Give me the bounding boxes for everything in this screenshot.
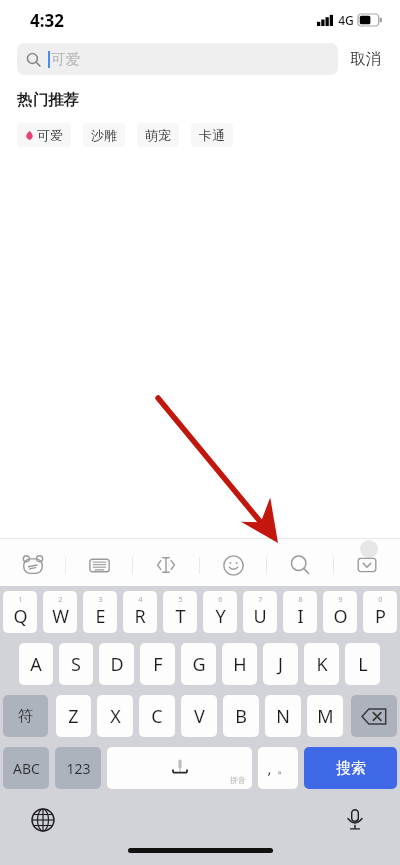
button[interactable]: F: [140, 643, 175, 685]
staticText: B: [235, 704, 247, 729]
button[interactable]: Change language: [30, 807, 56, 833]
button[interactable]: 1: [3, 591, 37, 633]
button[interactable]: 2: [43, 591, 77, 633]
staticText: T: [175, 604, 186, 629]
staticText: ,: [267, 758, 272, 778]
staticText: A: [30, 652, 42, 677]
button[interactable]: H: [222, 643, 257, 685]
staticText: W: [52, 604, 69, 629]
button[interactable]: Cursor: [133, 544, 199, 586]
button[interactable]: Handwriting: [66, 544, 132, 586]
staticText: Z: [68, 704, 79, 729]
button[interactable]: 符: [3, 695, 48, 737]
button[interactable]: V: [181, 695, 217, 737]
staticText: E: [95, 604, 106, 629]
button[interactable]: C: [139, 695, 175, 737]
staticText: G: [192, 652, 206, 677]
button[interactable]: Punctuation: [258, 747, 298, 789]
button[interactable]: B: [223, 695, 259, 737]
staticText: 拼音: [230, 775, 246, 785]
button[interactable]: Voice input: [342, 806, 368, 832]
staticText: 4:32: [30, 9, 64, 32]
button[interactable]: D: [99, 643, 134, 685]
staticText: O: [333, 604, 348, 629]
button[interactable]: Z: [56, 695, 91, 737]
staticText: 热门推荐: [17, 90, 79, 110]
button[interactable]: 萌宠: [137, 123, 179, 147]
staticText: ABC: [13, 759, 40, 778]
staticText: 沙雕: [91, 127, 117, 143]
staticText: Q: [13, 604, 28, 629]
button[interactable]: 取消: [338, 49, 383, 69]
button[interactable]: 6: [203, 591, 237, 633]
button[interactable]: J: [263, 643, 298, 685]
staticText: 卡通: [199, 127, 225, 143]
staticText: 5: [178, 594, 183, 604]
button[interactable]: ABC: [3, 747, 49, 789]
button[interactable]: 8: [283, 591, 317, 633]
staticText: N: [276, 704, 290, 729]
staticText: 可爱: [37, 127, 63, 143]
staticText: Y: [215, 604, 226, 629]
button[interactable]: Space: [107, 747, 252, 789]
staticText: M: [317, 704, 334, 729]
staticText: 7: [258, 594, 263, 604]
staticText: K: [316, 652, 328, 677]
button[interactable]: L: [345, 643, 380, 685]
button[interactable]: 沙雕: [83, 123, 125, 147]
staticText: 4G: [338, 12, 354, 28]
button[interactable]: N: [265, 695, 301, 737]
button[interactable]: 5: [163, 591, 197, 633]
staticText: 6: [218, 594, 223, 604]
staticText: 4: [138, 594, 143, 604]
staticText: 搜索: [336, 759, 366, 778]
button[interactable]: Search: [267, 544, 333, 586]
staticText: 0: [378, 594, 383, 604]
button[interactable]: 123: [55, 747, 101, 789]
button[interactable]: Collapse: [334, 544, 400, 586]
button[interactable]: S: [59, 643, 93, 685]
button[interactable]: 搜索: [304, 747, 397, 789]
button[interactable]: 卡通: [191, 123, 233, 147]
staticText: V: [194, 704, 205, 729]
button[interactable]: 9: [323, 591, 357, 633]
staticText: J: [278, 652, 283, 677]
staticText: R: [134, 604, 146, 629]
button[interactable]: 可爱: [17, 43, 338, 75]
staticText: 取消: [350, 49, 381, 69]
button[interactable]: A: [19, 643, 53, 685]
staticText: L: [358, 652, 368, 677]
button[interactable]: M: [307, 695, 343, 737]
staticText: S: [71, 652, 81, 677]
button[interactable]: K: [304, 643, 339, 685]
button[interactable]: 7: [243, 591, 277, 633]
staticText: 1: [18, 594, 23, 604]
button[interactable]: 3: [83, 591, 117, 633]
staticText: D: [110, 652, 124, 677]
button[interactable]: 可爱: [17, 123, 71, 147]
button[interactable]: G: [181, 643, 216, 685]
staticText: P: [375, 604, 386, 629]
staticText: H: [233, 652, 247, 677]
staticText: U: [253, 604, 267, 629]
button[interactable]: Backspace: [351, 695, 397, 737]
staticText: 9: [338, 594, 343, 604]
staticText: 123: [66, 759, 91, 778]
staticText: 。: [277, 760, 290, 776]
button[interactable]: Baidu input: [0, 544, 65, 586]
staticText: 3: [98, 594, 103, 604]
staticText: I: [297, 604, 304, 629]
staticText: 符: [18, 707, 33, 726]
button[interactable]: 4: [123, 591, 157, 633]
staticText: 2: [58, 594, 63, 604]
staticText: F: [153, 652, 163, 677]
staticText: 可爱: [51, 50, 80, 68]
staticText: 萌宠: [145, 127, 171, 143]
staticText: C: [151, 704, 163, 729]
staticText: X: [110, 704, 121, 729]
button[interactable]: 0: [363, 591, 397, 633]
button[interactable]: Emoji: [200, 544, 266, 586]
staticText: 8: [298, 594, 303, 604]
button[interactable]: X: [97, 695, 133, 737]
